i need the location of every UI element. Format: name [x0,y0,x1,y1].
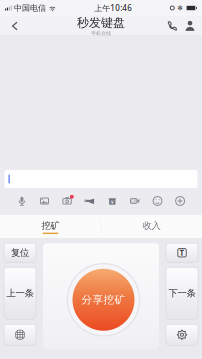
staticText: 挖矿 [41,220,59,231]
button[interactable]: 分享挖矿 [43,243,159,349]
staticText: T [179,247,184,258]
button[interactable]: Text style [166,243,198,262]
staticText: 上午10:46 [94,3,132,13]
button[interactable]: Voice [11,192,33,210]
button[interactable]: Emoji [146,192,169,210]
button[interactable]: Call [163,16,181,36]
button[interactable]: Back [3,16,27,36]
staticText: 手机在线 [91,30,111,37]
button[interactable]: 挖矿 [0,215,101,238]
button[interactable]: More [169,192,191,210]
staticText: 中国电信 [12,3,46,13]
button[interactable]: Language [4,324,36,345]
staticText: 收入 [142,220,160,231]
button[interactable]: 上一条 [4,267,36,319]
button[interactable]: Red packet [101,192,124,210]
button[interactable]: Camera [56,192,78,210]
button[interactable]: Settings [166,324,198,345]
staticText: 复位 [11,247,29,258]
button[interactable]: Photos [33,192,56,210]
button[interactable]: 收入 [101,215,202,238]
button[interactable]: 复位 [4,243,36,262]
staticText: 下一条 [168,287,195,299]
staticText: 分享挖矿 [81,293,125,306]
staticText: 上一条 [6,287,33,299]
staticText: 秒发键盘 [77,15,125,30]
button[interactable]: GIF [124,192,146,210]
button[interactable]: Broadcast [78,192,101,210]
button[interactable]: Contact [181,16,199,36]
staticText: ✻ [177,4,183,12]
staticText: ¥ [111,199,114,206]
staticText: GIF [131,198,137,204]
button[interactable]: 下一条 [166,267,198,319]
